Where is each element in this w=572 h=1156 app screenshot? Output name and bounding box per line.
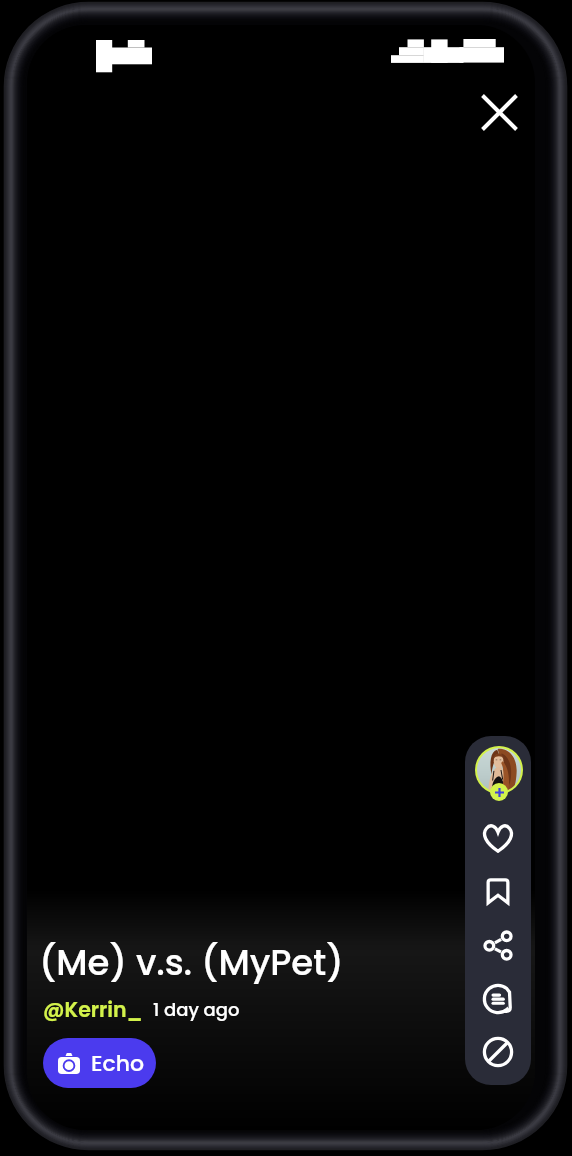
staticText: Echo	[91, 1048, 145, 1079]
button[interactable]: Share	[474, 921, 522, 969]
button[interactable]: Follow Kerrin_	[470, 746, 528, 804]
button[interactable]: Not interested	[474, 1028, 522, 1076]
staticText: 1 day ago	[153, 997, 240, 1022]
button[interactable]: Save	[474, 867, 522, 915]
staticText: (Me) v.s. (MyPet)	[39, 938, 344, 988]
button[interactable]: Echo	[43, 1038, 156, 1088]
staticText: @Kerrin_	[43, 995, 143, 1024]
button[interactable]: Close	[470, 83, 528, 141]
button[interactable]: Like	[474, 814, 522, 862]
button[interactable]: Comments	[474, 975, 522, 1023]
